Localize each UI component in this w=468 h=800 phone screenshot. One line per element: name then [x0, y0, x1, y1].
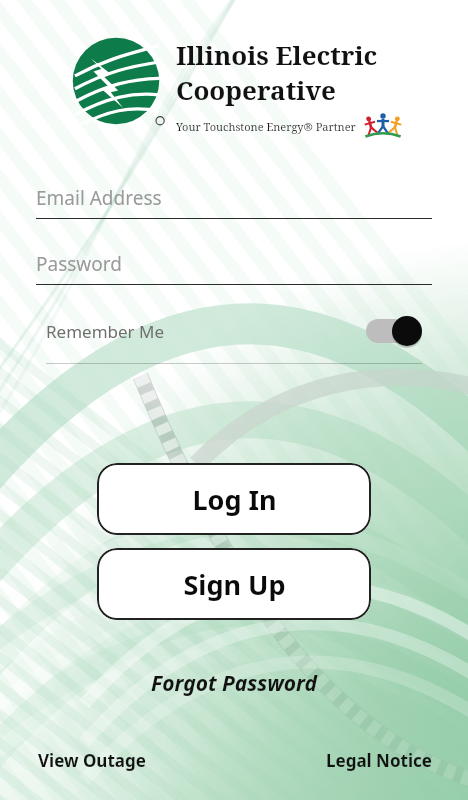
staticText: Legal Notice	[326, 749, 432, 772]
other: Touchstone Energy	[361, 113, 405, 139]
button[interactable]: View Outage	[0, 741, 156, 780]
staticText: Remember Me	[46, 320, 165, 343]
staticText: Sign Up	[183, 566, 286, 603]
staticText: Your Touchstone Energy® Partner	[176, 119, 356, 134]
staticText: Illinois Electric	[176, 37, 378, 72]
button[interactable]: Legal Notice	[316, 741, 468, 780]
staticText: Log In	[192, 481, 277, 518]
button[interactable]: Remember Me toggle	[366, 316, 422, 346]
button[interactable]: Remember Me	[46, 309, 422, 353]
button[interactable]: Sign Up	[97, 548, 371, 620]
staticText: Forgot Password	[151, 669, 317, 698]
other: Illinois Electric Cooperative logo	[70, 35, 162, 127]
button[interactable]: Forgot Password	[135, 663, 333, 704]
button[interactable]: Log In	[97, 463, 371, 535]
staticText: Cooperative	[176, 72, 336, 107]
staticText: Email Address	[36, 185, 162, 211]
button[interactable]: Password	[36, 251, 432, 285]
button[interactable]: Email Address	[36, 185, 432, 219]
staticText: Password	[36, 251, 122, 277]
staticText: View Outage	[38, 749, 146, 772]
